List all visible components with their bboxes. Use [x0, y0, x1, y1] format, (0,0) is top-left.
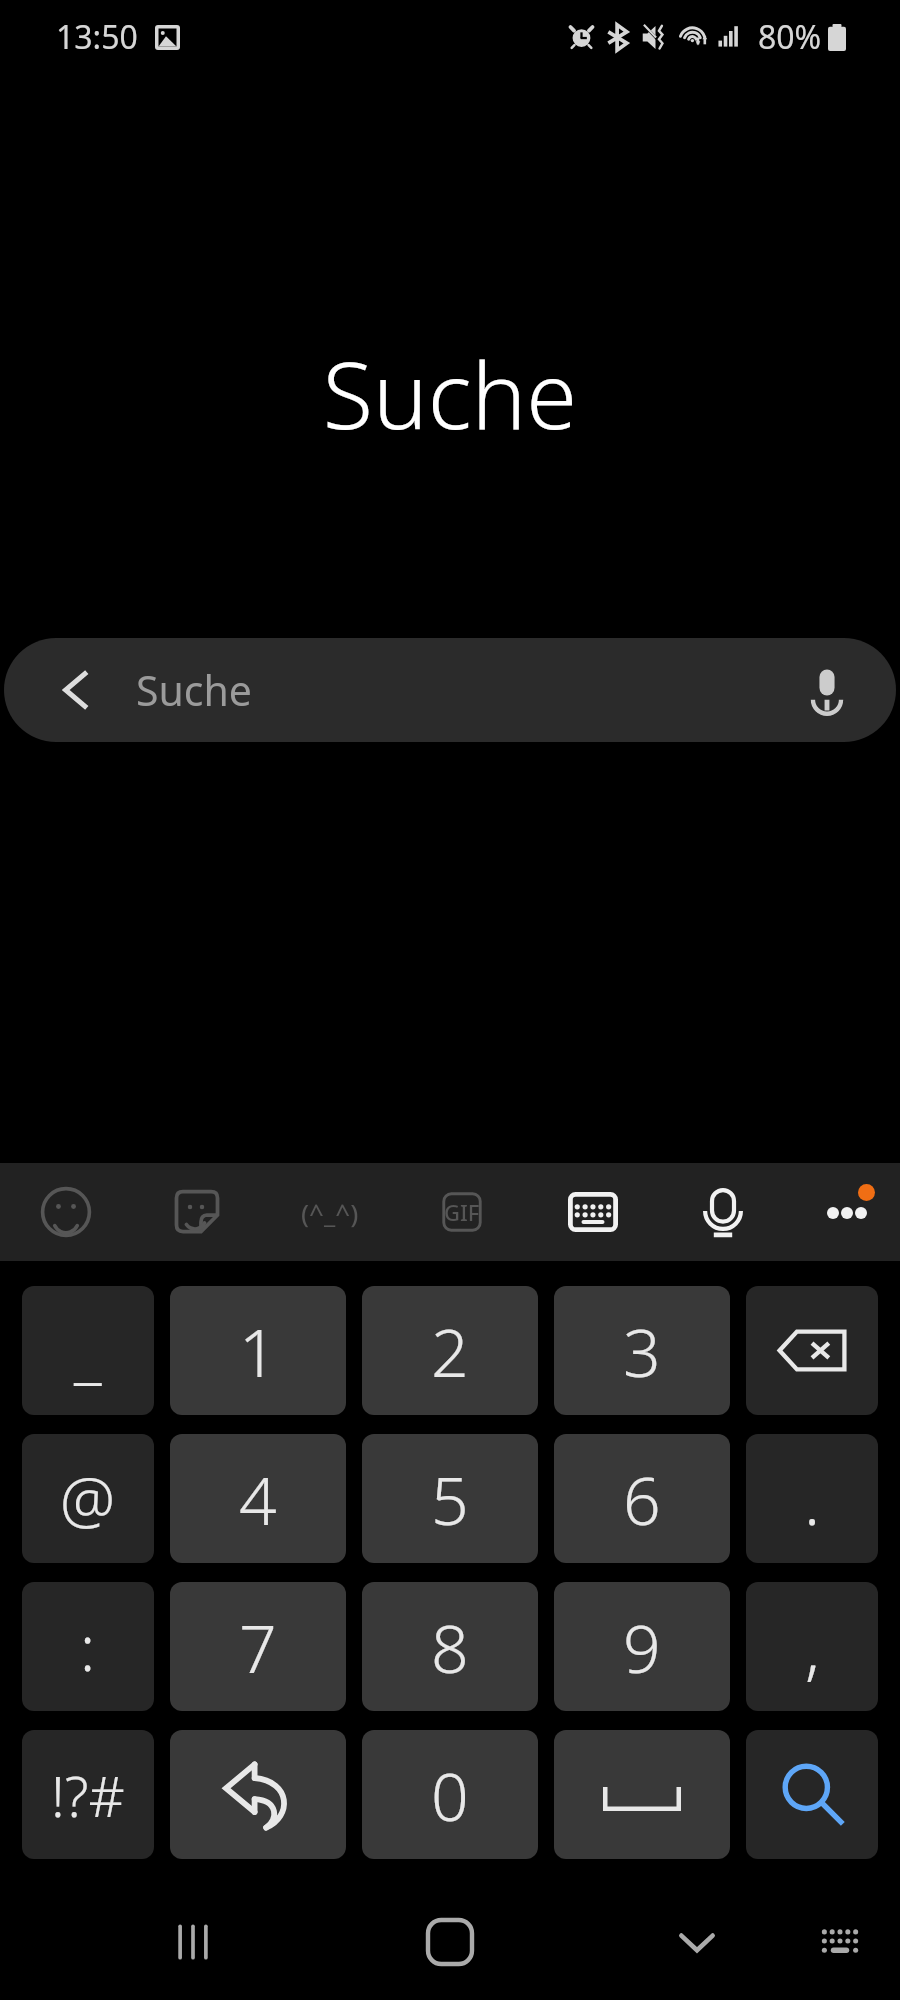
button[interactable]: , — [746, 1582, 878, 1711]
staticText: 5 — [431, 1454, 469, 1544]
button[interactable]: 0 — [362, 1730, 538, 1859]
button[interactable]: Emoji — [26, 1163, 106, 1261]
staticText: 8 — [431, 1602, 469, 1692]
staticText: , — [805, 1602, 820, 1692]
button[interactable]: Voice search — [800, 663, 854, 717]
button[interactable]: @ — [22, 1434, 154, 1563]
button[interactable]: 9 — [554, 1582, 730, 1711]
staticText: 2 — [431, 1306, 469, 1396]
button[interactable]: Back — [4, 638, 896, 742]
button[interactable]: Stickers — [157, 1163, 237, 1261]
button[interactable]: search — [746, 1730, 878, 1859]
staticText: Suche — [136, 662, 252, 718]
staticText: 4 — [239, 1454, 277, 1544]
button[interactable]: undo — [170, 1730, 346, 1859]
button[interactable]: : — [22, 1582, 154, 1711]
button[interactable]: 7 — [170, 1582, 346, 1711]
button[interactable]: Change keyboard — [795, 1897, 885, 1987]
button[interactable]: backspace — [746, 1286, 878, 1415]
staticText: 7 — [239, 1602, 277, 1692]
staticText: 13:50 — [56, 15, 138, 59]
button[interactable]: !?# — [22, 1730, 154, 1859]
staticText: _ — [74, 1306, 102, 1396]
button[interactable]: 1 — [170, 1286, 346, 1415]
button[interactable]: 2 — [362, 1286, 538, 1415]
staticText: : — [80, 1605, 96, 1689]
button[interactable]: More options — [807, 1163, 887, 1261]
button[interactable]: 4 — [170, 1434, 346, 1563]
button[interactable]: 8 — [362, 1582, 538, 1711]
button[interactable]: Home — [405, 1897, 495, 1987]
staticText: GIF — [444, 1197, 480, 1227]
staticText: Suche — [0, 331, 900, 456]
staticText: . — [804, 1454, 821, 1544]
button[interactable]: _ — [22, 1286, 154, 1415]
button[interactable]: 5 — [362, 1434, 538, 1563]
button[interactable]: Hide keyboard — [652, 1897, 742, 1987]
staticText: 6 — [623, 1454, 661, 1544]
button[interactable]: GIF — [422, 1163, 502, 1261]
staticText: @ — [60, 1457, 116, 1541]
button[interactable]: Recents — [148, 1897, 238, 1987]
button[interactable]: 6 — [554, 1434, 730, 1563]
staticText: 80% — [758, 15, 822, 59]
staticText: 1 — [239, 1306, 277, 1396]
button[interactable]: 3 — [554, 1286, 730, 1415]
button[interactable]: Back — [50, 667, 96, 713]
button[interactable]: Keyboard layout — [553, 1163, 633, 1261]
staticText: (^_^) — [301, 1195, 359, 1230]
button[interactable]: . — [746, 1434, 878, 1563]
button[interactable]: Voice input — [683, 1163, 763, 1261]
staticText: 0 — [431, 1750, 469, 1840]
staticText: !?# — [51, 1757, 125, 1833]
staticText: 9 — [623, 1602, 661, 1692]
button[interactable]: (^_^) — [285, 1163, 375, 1261]
button[interactable]: space — [554, 1730, 730, 1859]
staticText: 3 — [623, 1306, 661, 1396]
